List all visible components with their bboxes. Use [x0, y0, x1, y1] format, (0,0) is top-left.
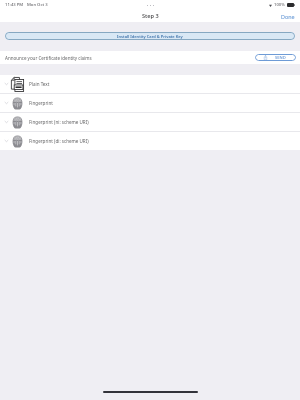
staticText: Fingerprint — [29, 100, 53, 106]
staticText: Announce your Certificate identity claim… — [5, 55, 92, 61]
button[interactable]: Fingerprint (ni: scheme URI) — [0, 113, 300, 131]
button[interactable]: Install Identity Card & Private Key — [5, 32, 295, 40]
button[interactable]: SEND — [255, 54, 296, 61]
staticText: 100% — [274, 2, 285, 8]
staticText: Fingerprint (di: scheme URI) — [29, 138, 89, 144]
button[interactable]: Fingerprint (di: scheme URI) — [0, 132, 300, 150]
staticText: 11:43 PM — [5, 2, 24, 8]
staticText: Mon Oct 3 — [27, 2, 48, 8]
staticText: Fingerprint (ni: scheme URI) — [29, 119, 89, 125]
staticText: SEND — [275, 55, 286, 61]
button[interactable]: Done — [276, 11, 300, 22]
staticText: Done — [281, 13, 295, 20]
staticText: Plain Text — [29, 81, 50, 87]
staticText: Install Identity Card & Private Key — [117, 34, 183, 39]
staticText: Step 3 — [142, 12, 159, 20]
button[interactable]: Plain Text — [0, 75, 300, 93]
button[interactable]: Fingerprint — [0, 94, 300, 112]
